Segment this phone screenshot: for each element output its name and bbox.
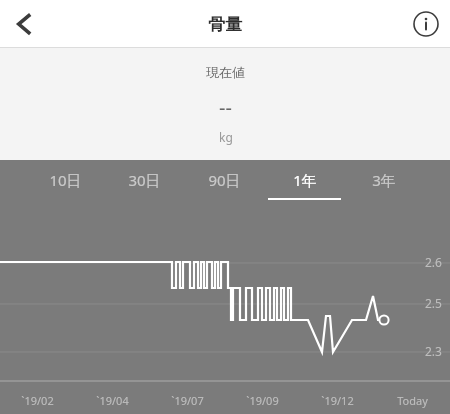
staticText: 2.3 [425,343,442,359]
staticText: 30日 [128,170,161,190]
staticText: 2.5 [425,295,442,311]
staticText: 3年 [372,170,396,190]
button[interactable]: 90日 [184,160,264,212]
button[interactable]: 3年 [344,160,424,212]
staticText: Today [397,393,428,408]
staticText: 1年 [293,170,317,190]
staticText: kg [219,129,233,145]
staticText: 90日 [208,170,241,190]
button[interactable]: 1年 [264,160,344,212]
staticText: `19/04 [96,393,129,408]
staticText: 骨量 [208,14,242,35]
staticText: 2.6 [425,254,442,270]
staticText: `19/07 [171,393,204,408]
staticText: `19/09 [246,393,279,408]
button[interactable]: 30日 [105,160,184,212]
staticText: `19/02 [21,393,54,408]
staticText: 現在値 [206,64,245,80]
button[interactable]: Information [402,0,450,48]
staticText: -- [219,94,232,121]
staticText: 10日 [49,170,82,190]
button[interactable]: Back [0,0,48,48]
staticText: `19/12 [321,393,354,408]
button[interactable]: 10日 [26,160,105,212]
